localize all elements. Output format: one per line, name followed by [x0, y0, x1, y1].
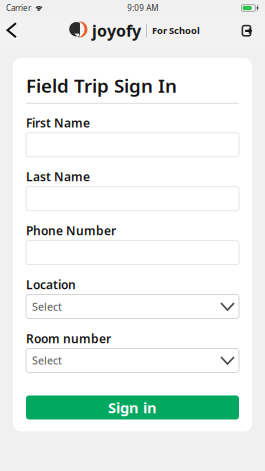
button[interactable]: Select: [26, 294, 239, 318]
button[interactable]: [26, 241, 239, 265]
staticText: Location: [26, 277, 76, 292]
staticText: Last Name: [26, 169, 90, 185]
staticText: Phone Number: [26, 223, 116, 239]
staticText: For School: [152, 24, 200, 37]
staticText: Room number: [26, 330, 111, 346]
staticText: Carrier: [6, 3, 31, 13]
staticText: First Name: [26, 115, 90, 131]
button[interactable]: Back: [0, 17, 25, 45]
staticText: Field Trip Sign In: [26, 73, 177, 98]
button[interactable]: Log out: [232, 18, 265, 44]
button[interactable]: [26, 187, 239, 211]
staticText: Select: [32, 299, 62, 314]
button[interactable]: [26, 133, 239, 157]
button[interactable]: Sign in: [26, 395, 239, 419]
staticText: Select: [32, 353, 62, 368]
button[interactable]: Select: [26, 348, 239, 372]
staticText: joyofy: [92, 20, 141, 41]
staticText: Sign in: [108, 398, 157, 417]
staticText: 9:09 AM: [127, 3, 158, 13]
